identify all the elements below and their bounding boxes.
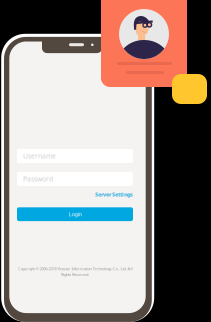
staticText: Password xyxy=(23,175,53,183)
button[interactable]: Login xyxy=(17,207,133,221)
staticText: Server Settings xyxy=(95,191,133,198)
staticText: Username xyxy=(23,152,56,160)
staticText: Rights Reserved. xyxy=(61,272,89,277)
button[interactable]: Server Settings xyxy=(17,190,133,199)
staticText: Login xyxy=(68,211,81,218)
staticText: Copyright © 2006-2018 Yeastar Informatio… xyxy=(17,266,132,271)
